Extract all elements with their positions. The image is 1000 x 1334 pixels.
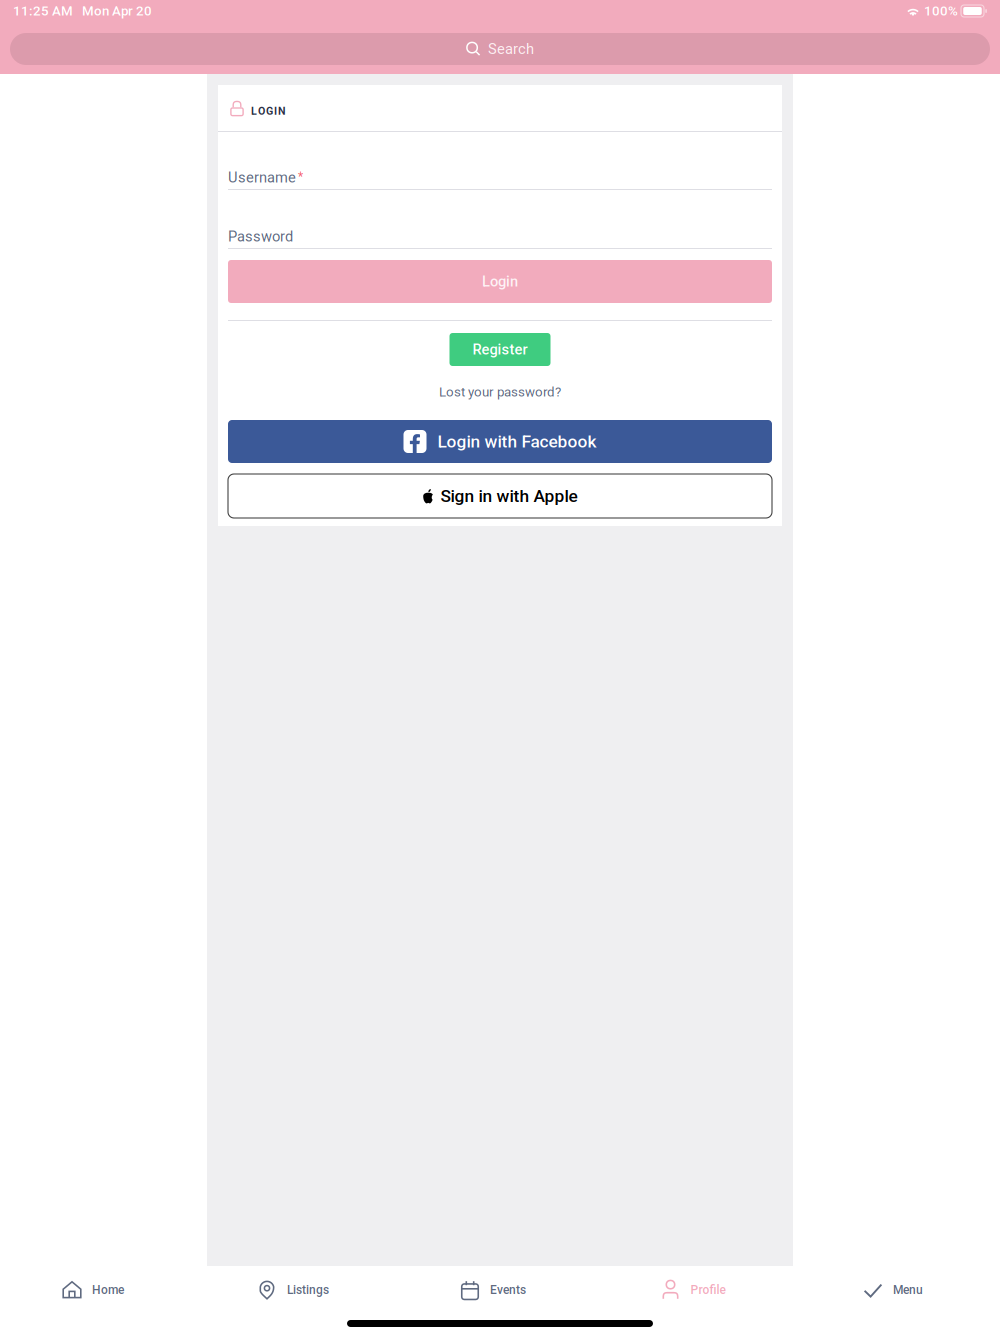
staticText: Sign in with Apple bbox=[440, 486, 577, 506]
button[interactable]: Login with Facebook bbox=[228, 420, 772, 463]
button[interactable]: Events bbox=[400, 1266, 600, 1314]
staticText: Profile bbox=[690, 1283, 725, 1297]
staticText: Login bbox=[482, 273, 518, 290]
staticText: Password bbox=[228, 228, 293, 245]
staticText: Events bbox=[490, 1283, 526, 1297]
staticText: Search bbox=[488, 40, 534, 58]
staticText: * bbox=[298, 169, 303, 183]
staticText: Home bbox=[92, 1283, 124, 1297]
staticText: Menu bbox=[893, 1283, 923, 1297]
staticText: 100% bbox=[921, 3, 961, 19]
staticText: Lost your password? bbox=[439, 384, 561, 400]
staticText: Mon Apr 20 bbox=[73, 3, 152, 19]
staticText: Login with Facebook bbox=[437, 431, 596, 452]
button[interactable]: Lost your password? bbox=[439, 382, 561, 402]
staticText: Username bbox=[228, 169, 296, 186]
button[interactable]: Home bbox=[0, 1266, 200, 1314]
button[interactable]: Register bbox=[449, 333, 550, 366]
button[interactable]: Login bbox=[228, 260, 772, 303]
staticText: L O G I N bbox=[251, 105, 286, 117]
button[interactable]: Menu bbox=[800, 1266, 1000, 1314]
button[interactable]: Search bbox=[10, 33, 990, 65]
button[interactable]: Listings bbox=[200, 1266, 400, 1314]
staticText: 11:25 AM bbox=[13, 3, 73, 19]
button[interactable]: Profile bbox=[600, 1266, 800, 1314]
staticText: Listings bbox=[287, 1283, 329, 1297]
button[interactable]: Sign in with Apple bbox=[228, 474, 772, 518]
staticText: Register bbox=[472, 341, 527, 358]
